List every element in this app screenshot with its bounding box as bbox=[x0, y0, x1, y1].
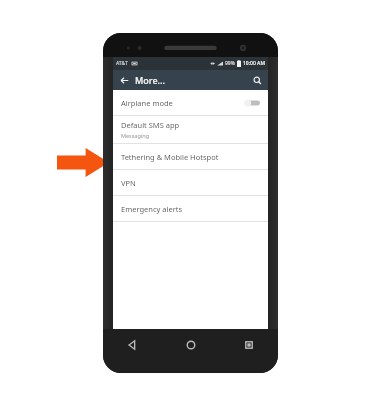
button[interactable]: Home bbox=[162, 331, 220, 359]
button[interactable]: Back bbox=[113, 70, 135, 90]
button[interactable]: Recent apps bbox=[220, 331, 278, 359]
button[interactable]: Search bbox=[246, 70, 268, 90]
button[interactable]: Default SMS app bbox=[113, 116, 268, 143]
button[interactable]: VPN bbox=[113, 170, 268, 195]
staticText: Messaging bbox=[121, 132, 150, 139]
staticText: 10:00 AM bbox=[243, 60, 265, 67]
staticText: Airplane mode bbox=[121, 98, 173, 108]
button[interactable]: Emergency alerts bbox=[113, 196, 268, 221]
staticText: More... bbox=[135, 74, 165, 86]
staticText: Default SMS app bbox=[121, 120, 180, 130]
button[interactable]: Back bbox=[103, 331, 162, 359]
button[interactable]: Tethering & Mobile Hotspot bbox=[113, 144, 268, 169]
staticText: Tethering & Mobile Hotspot bbox=[121, 152, 219, 162]
staticText: VPN bbox=[121, 178, 136, 188]
staticText: AT&T bbox=[116, 60, 128, 67]
staticText: Emergency alerts bbox=[121, 204, 183, 214]
staticText: 99% bbox=[225, 60, 235, 67]
button[interactable]: Airplane mode bbox=[113, 90, 268, 115]
other: Pointer arrow bbox=[57, 148, 109, 177]
